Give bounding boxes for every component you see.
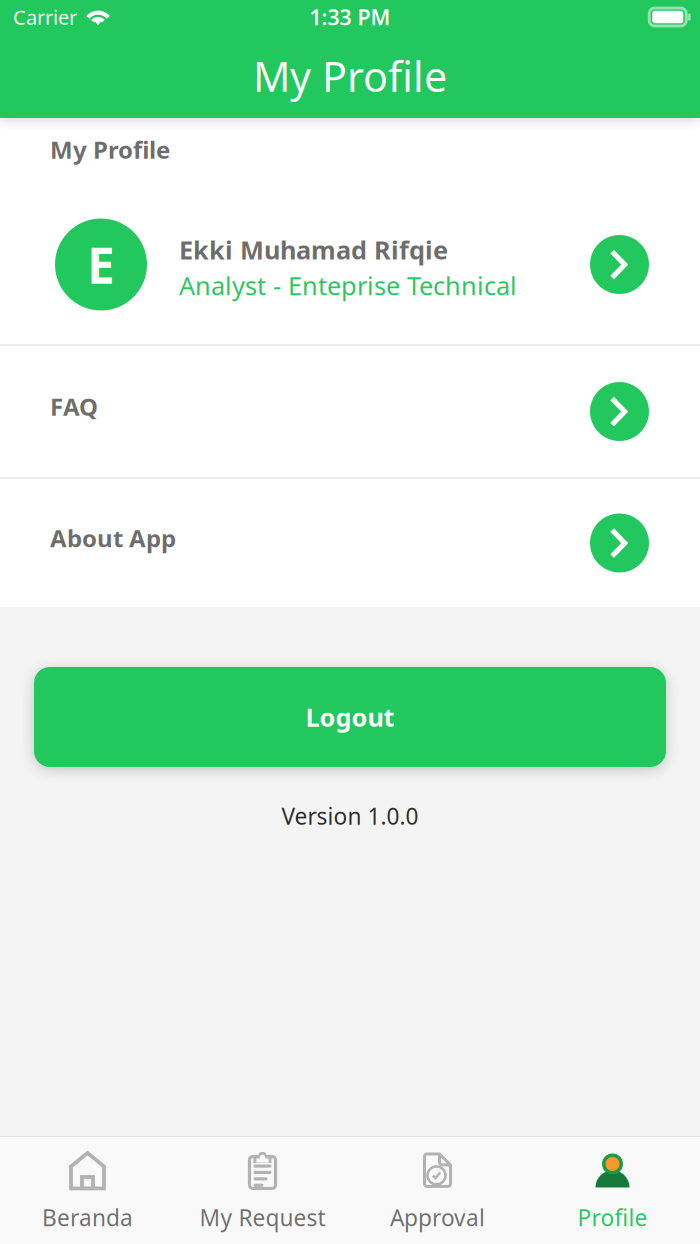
button[interactable]: About App (0, 479, 700, 607)
staticText: Ekki Muhamad Rifqie (179, 233, 448, 266)
staticText: 1:33 PM (309, 3, 390, 31)
staticText: Version 1.0.0 (281, 801, 418, 831)
staticText: My Profile (253, 49, 447, 103)
staticText: My Request (199, 1202, 325, 1232)
staticText: FAQ (50, 391, 98, 422)
button[interactable]: Logout (34, 667, 666, 767)
staticText: About App (50, 522, 176, 554)
staticText: Logout (305, 700, 394, 734)
staticText: Analyst - Enteprise Technical (179, 268, 517, 302)
button[interactable]: E (0, 185, 700, 344)
staticText: Profile (577, 1202, 647, 1232)
button[interactable]: Approval (350, 1137, 525, 1244)
staticText: Beranda (42, 1202, 133, 1232)
button[interactable]: Profile (525, 1137, 700, 1244)
button[interactable]: My Request (175, 1137, 350, 1244)
staticText: Approval (390, 1202, 485, 1232)
button[interactable]: Beranda (0, 1137, 175, 1244)
button[interactable]: FAQ (0, 346, 700, 477)
staticText: My Profile (50, 134, 170, 165)
staticText: Carrier (13, 4, 77, 30)
staticText: E (87, 232, 115, 297)
